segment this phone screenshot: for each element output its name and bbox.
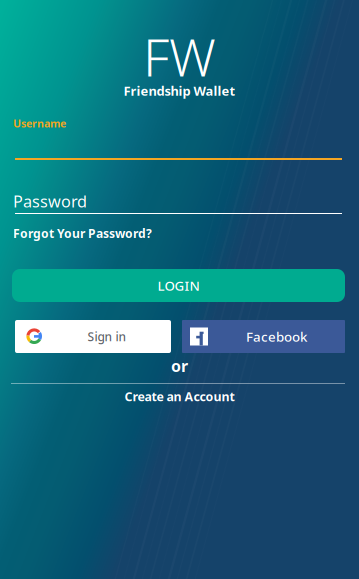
staticText: Friendship Wallet (123, 82, 235, 100)
button[interactable]: LOGIN (12, 269, 345, 302)
staticText: Password (13, 190, 87, 212)
staticText: Forgot Your Password? (13, 225, 152, 241)
button[interactable]: Forgot Your Password? (0, 222, 167, 244)
button[interactable]: Facebook (182, 320, 345, 353)
staticText: LOGIN (157, 276, 199, 295)
staticText: FW (143, 21, 216, 92)
staticText: Sign in (87, 328, 126, 345)
staticText: Facebook (246, 327, 307, 346)
staticText: Create an Account (124, 388, 234, 405)
staticText: or (171, 355, 188, 377)
button[interactable]: Sign in (15, 320, 171, 353)
button[interactable]: Create an Account (0, 384, 359, 409)
staticText: Username (13, 116, 66, 130)
